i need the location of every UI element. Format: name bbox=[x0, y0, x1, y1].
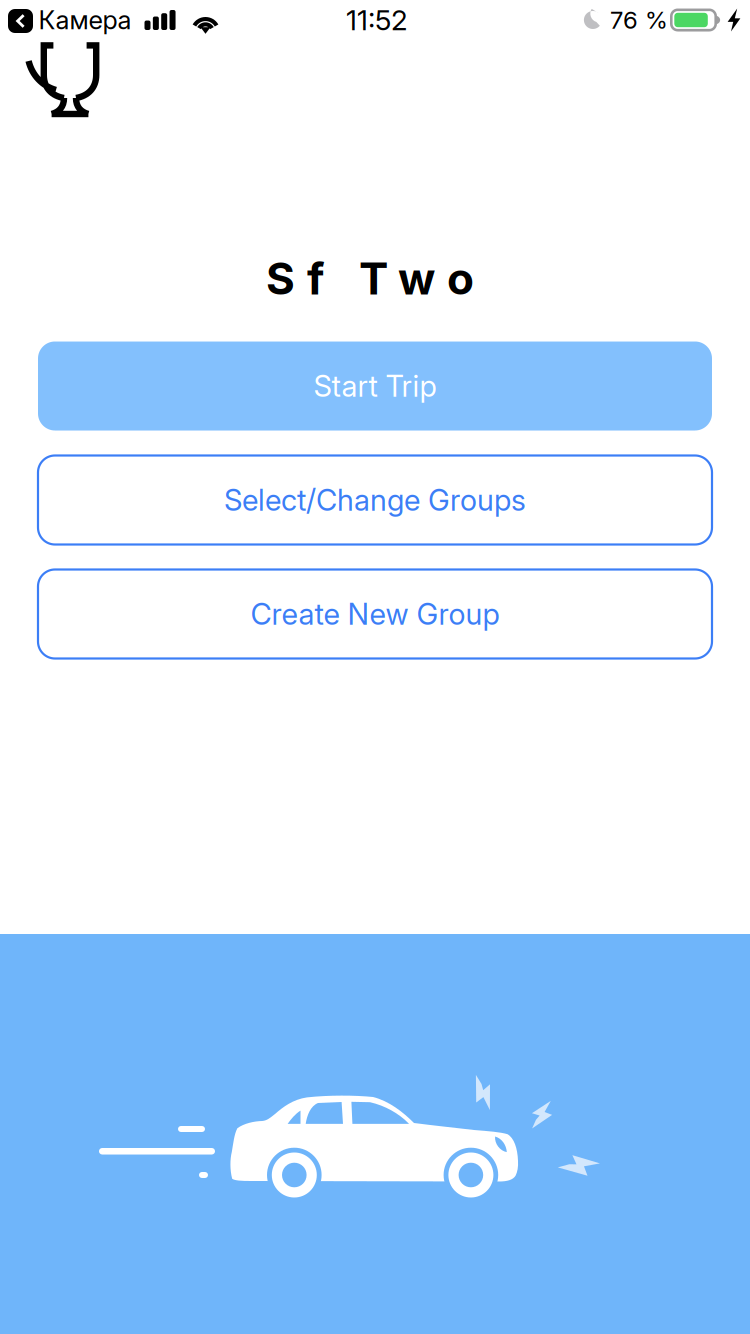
staticText: 76 % bbox=[610, 5, 668, 34]
staticText: 11:52 bbox=[346, 3, 408, 37]
button[interactable]: Trophy bbox=[22, 42, 118, 120]
staticText: Start Trip bbox=[313, 368, 436, 404]
staticText: Камера bbox=[38, 5, 131, 35]
staticText: Sf Two bbox=[266, 252, 474, 305]
staticText: Select/Change Groups bbox=[224, 482, 526, 518]
button[interactable]: Start Trip bbox=[38, 341, 712, 430]
staticText: Create New Group bbox=[250, 596, 499, 632]
button[interactable]: Select/Change Groups bbox=[38, 455, 712, 544]
button[interactable]: Create New Group bbox=[38, 569, 712, 658]
